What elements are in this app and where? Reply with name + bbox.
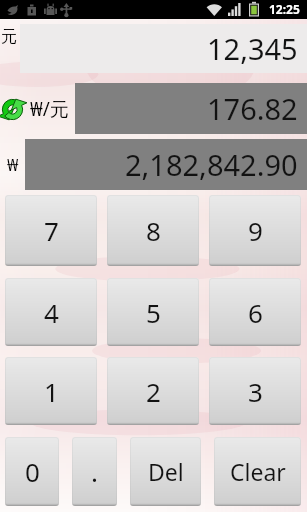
staticText: 12:25	[269, 1, 300, 17]
button[interactable]: 6	[209, 278, 301, 346]
staticText: Clear	[230, 456, 286, 487]
staticText: 2,182,842.90	[125, 145, 298, 184]
staticText: .	[91, 454, 98, 489]
button[interactable]: Del	[130, 437, 201, 506]
staticText: 7	[44, 213, 59, 248]
button[interactable]: 3	[209, 357, 301, 425]
staticText: 3	[248, 374, 263, 409]
staticText: 12,345	[207, 29, 298, 68]
button[interactable]: Clear	[214, 437, 301, 506]
button[interactable]: 1	[5, 357, 97, 425]
staticText: 2	[146, 374, 161, 409]
staticText: 6	[248, 295, 263, 330]
button[interactable]: 0	[5, 437, 59, 506]
button[interactable]: .	[72, 437, 117, 506]
staticText: 8	[146, 213, 161, 248]
staticText: ₩	[7, 153, 19, 176]
button[interactable]: 7	[5, 195, 97, 266]
button[interactable]: 4	[5, 278, 97, 346]
staticText: ₩/元	[30, 96, 69, 122]
staticText: 9	[248, 213, 263, 248]
staticText: 5	[146, 295, 161, 330]
staticText: 1	[44, 374, 59, 409]
staticText: 176.82	[207, 89, 298, 128]
button[interactable]: 9	[209, 195, 301, 266]
button[interactable]: Swap currencies	[0, 96, 24, 122]
staticText: 4	[44, 295, 59, 330]
staticText: 元	[1, 27, 17, 47]
staticText: 0	[25, 454, 40, 489]
button[interactable]: 8	[107, 195, 199, 266]
button[interactable]: 5	[107, 278, 199, 346]
button[interactable]: 2	[107, 357, 199, 425]
staticText: Del	[148, 456, 184, 487]
